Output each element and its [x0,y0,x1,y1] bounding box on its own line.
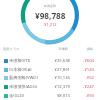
staticText: 新興国株(VWO) [9,75,38,81]
staticText: 日本株(VEA) [9,67,32,73]
staticText: ¥27,891 [46,67,70,73]
staticText: 米国株(VTI) [9,58,31,64]
button[interactable]: 米国債券(AGG) [0,83,100,92]
staticText: 金(GLD) [9,93,24,99]
button[interactable]: 新興国株(VWO) [0,74,100,83]
staticText: -¥93 [74,93,94,99]
staticText: 総資産額 [44,4,56,8]
staticText: ¥33,638 [46,58,70,64]
staticText: -¥52 [74,75,94,81]
staticText: 資産クラス [3,47,20,51]
staticText: 損益 [73,47,93,51]
staticText: -¥1,212 [43,22,57,27]
button[interactable]: 日本株(VEA) [0,66,100,75]
staticText: 米国債券(AGG) [9,84,37,90]
button[interactable]: 米国株(VTI) [0,57,100,66]
staticText: ¥8,013 [46,93,70,99]
button[interactable]: 金(GLD) [0,92,100,100]
staticText: -¥247 [74,84,94,90]
staticText: -¥604 [74,58,94,64]
staticText: ¥98,788 [35,10,66,21]
staticText: ¥10,126 [46,75,70,81]
staticText: -¥143 [74,67,94,73]
staticText: 評価額 [48,47,68,51]
staticText: ¥12,379 [46,84,70,90]
